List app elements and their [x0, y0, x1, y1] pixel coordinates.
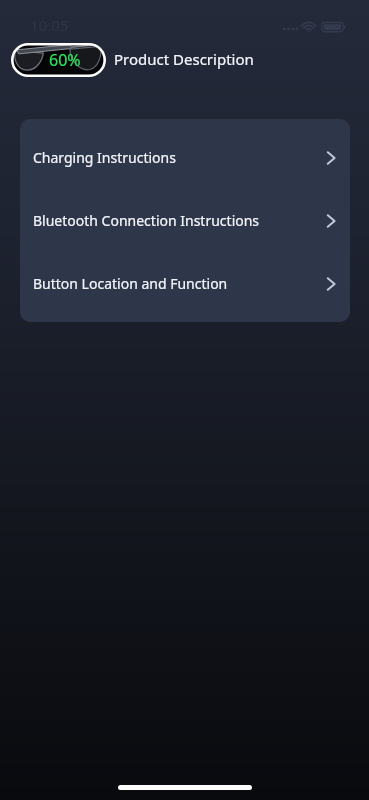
staticText: 60% [49, 49, 81, 71]
staticText: Button Location and Function [33, 274, 228, 293]
staticText: Charging Instructions [33, 148, 176, 167]
staticText: Product Description [114, 49, 254, 69]
button[interactable]: Glasses battery 60 percent [11, 43, 106, 77]
staticText: 10:05 [30, 15, 69, 35]
button[interactable]: Button Location and Function [20, 252, 350, 315]
button[interactable]: Charging Instructions [20, 126, 350, 189]
staticText: Bluetooth Connection Instructions [33, 211, 260, 230]
button[interactable]: Bluetooth Connection Instructions [20, 189, 350, 252]
